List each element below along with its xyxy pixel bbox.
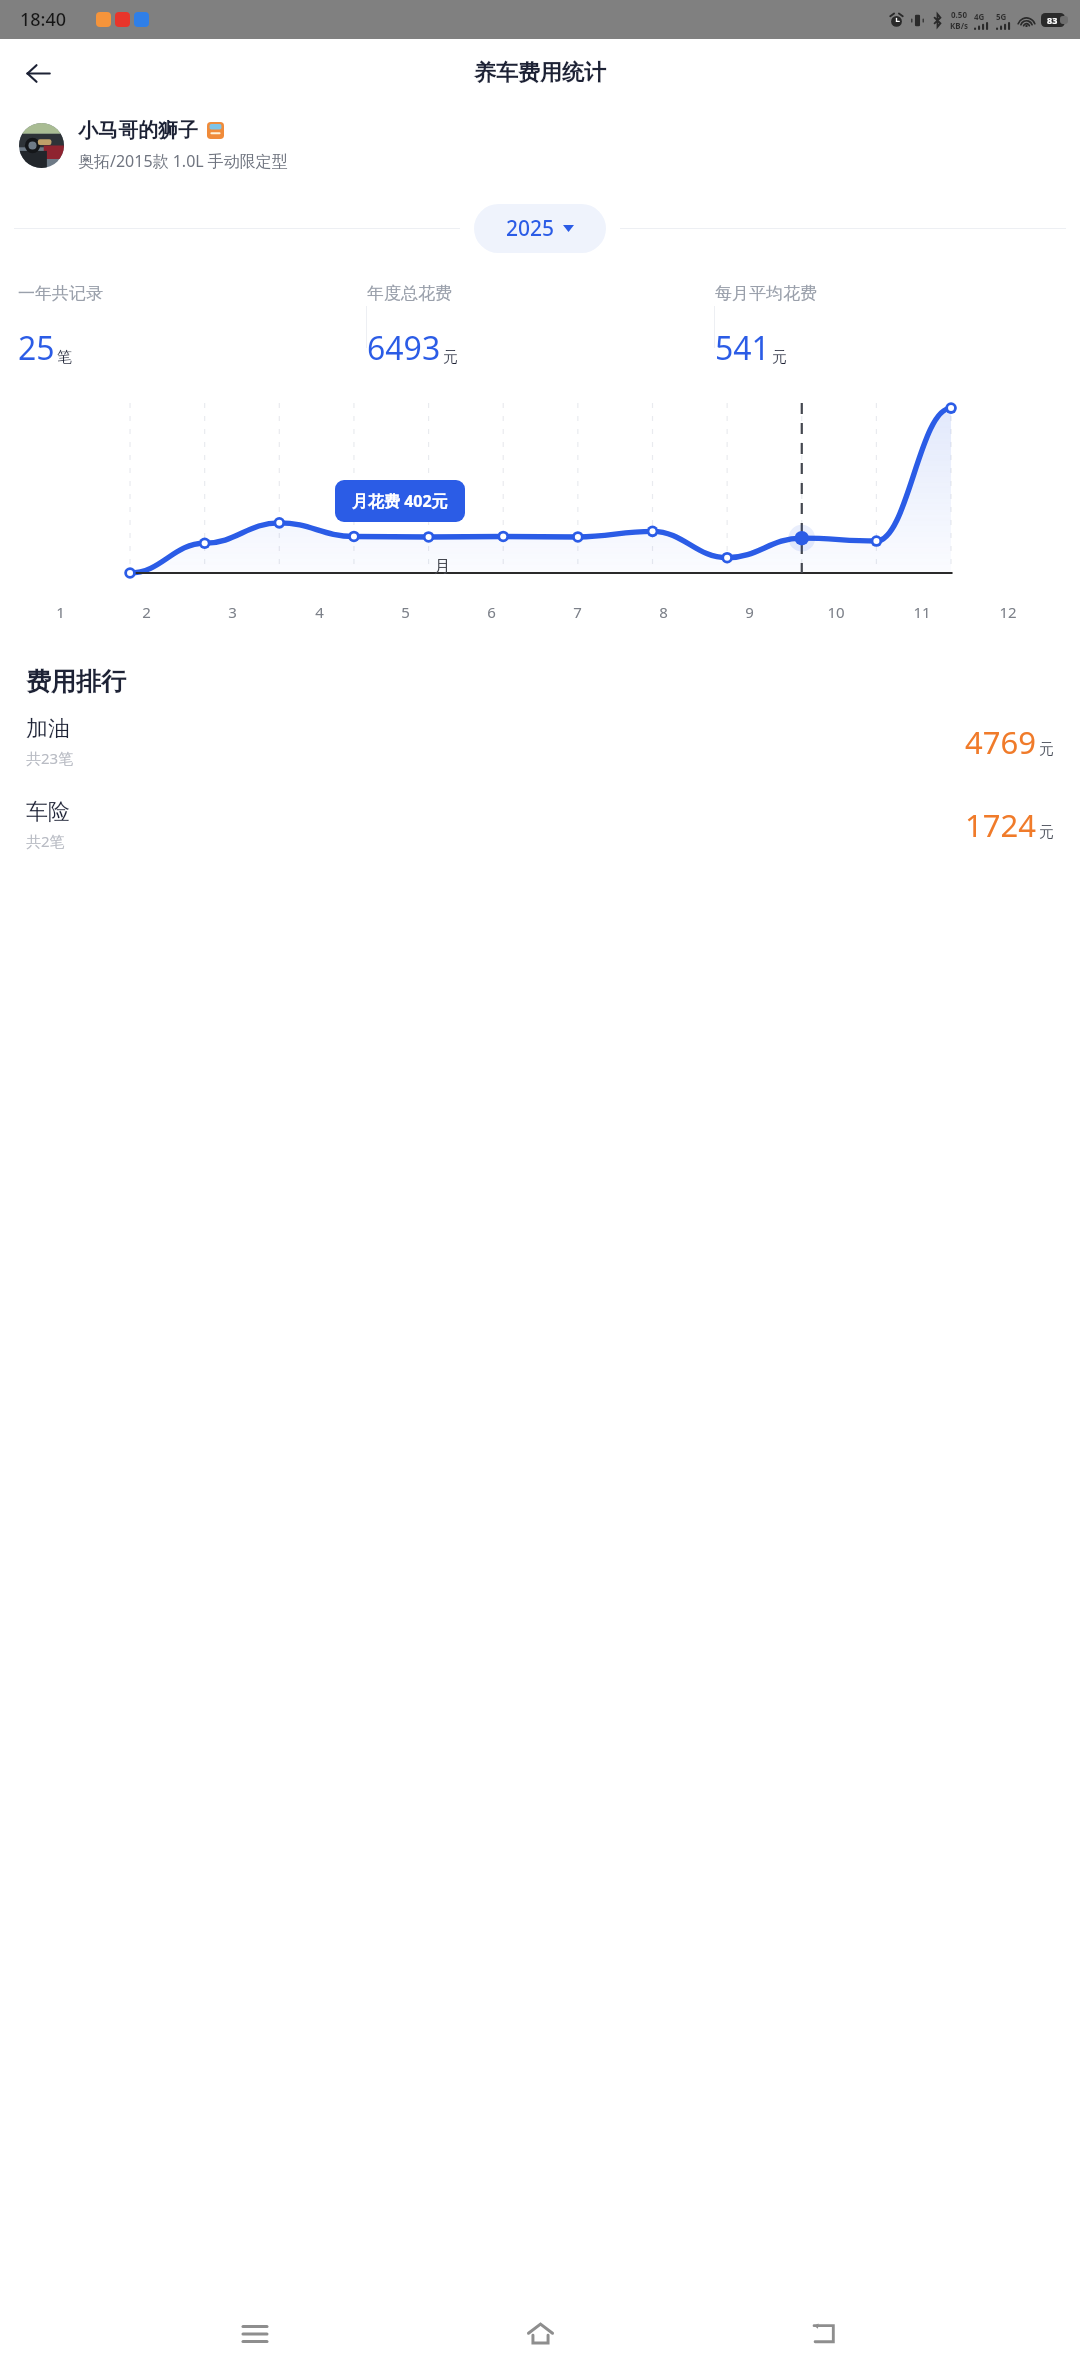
staticText: 养车费用统计: [474, 59, 606, 87]
staticText: 1724: [965, 804, 1036, 846]
staticText: 4769: [965, 721, 1036, 763]
staticText: 2: [142, 602, 151, 622]
staticText: 12: [999, 602, 1017, 622]
button[interactable]: 车险: [0, 794, 1080, 855]
staticText: 2025: [506, 214, 555, 243]
staticText: 11: [913, 602, 931, 622]
staticText: 车险: [26, 798, 70, 826]
staticText: 每月平均花费: [715, 283, 1062, 304]
staticText: 共23笔: [26, 748, 74, 768]
button[interactable]: 月花费 402元: [335, 480, 465, 522]
staticText: 3: [228, 602, 237, 622]
button[interactable]: 一年共记录: [18, 283, 366, 370]
staticText: 25: [18, 326, 55, 370]
staticText: 541: [715, 326, 770, 370]
staticText: 6493: [367, 326, 441, 370]
staticText: 5: [401, 602, 410, 622]
staticText: 6: [487, 602, 496, 622]
staticText: 元: [1039, 823, 1054, 842]
staticText: 加油: [26, 715, 70, 743]
staticText: 小马哥的狮子: [78, 118, 198, 143]
staticText: 4G: [974, 11, 985, 22]
staticText: 年度总花费: [367, 283, 714, 304]
staticText: 笔: [57, 348, 72, 367]
staticText: 9: [745, 602, 754, 622]
staticText: 8: [659, 602, 668, 622]
staticText: 共2笔: [26, 831, 65, 851]
staticText: 83: [1047, 14, 1058, 26]
button[interactable]: 加油: [0, 711, 1080, 772]
staticText: 5G: [996, 11, 1007, 22]
button[interactable]: Home: [510, 2304, 570, 2364]
staticText: 费用排行: [26, 666, 126, 697]
button[interactable]: 每月平均花费: [715, 283, 1062, 370]
staticText: 元: [1039, 740, 1054, 759]
button[interactable]: 小马哥的狮子: [19, 118, 1080, 172]
staticText: 1: [56, 602, 65, 622]
staticText: 7: [573, 602, 582, 622]
staticText: 月花费 402元: [352, 490, 448, 512]
staticText: KB/s: [950, 20, 968, 31]
button[interactable]: 2025: [474, 204, 606, 253]
button[interactable]: Recent apps: [225, 2304, 285, 2364]
button[interactable]: 年度总花费: [367, 283, 714, 370]
staticText: 0.50: [951, 9, 967, 20]
staticText: 奥拓/2015款 1.0L 手动限定型: [78, 150, 288, 172]
staticText: 元: [443, 348, 458, 367]
button[interactable]: Back: [14, 49, 62, 97]
button[interactable]: Back: [795, 2304, 855, 2364]
staticText: 4: [315, 602, 324, 622]
staticText: 元: [772, 348, 787, 367]
staticText: 一年共记录: [18, 283, 366, 304]
staticText: 18:40: [20, 7, 67, 32]
staticText: 月: [434, 556, 451, 577]
staticText: 10: [827, 602, 845, 622]
